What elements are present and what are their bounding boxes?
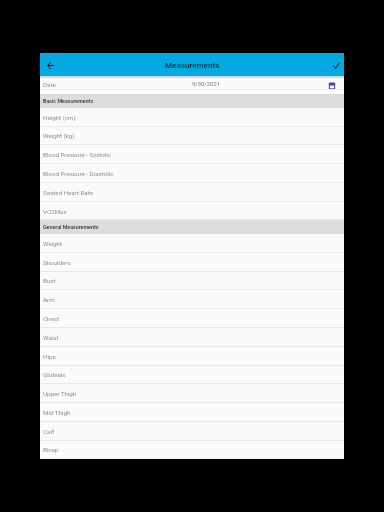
button[interactable]: Gluteals <box>40 365 344 384</box>
button[interactable]: VO2Max <box>40 202 344 221</box>
staticText: Measurements <box>165 60 220 69</box>
button[interactable]: Calf <box>40 422 344 441</box>
staticText: VO2Max <box>43 208 67 215</box>
staticText: Upper Thigh <box>43 390 77 397</box>
button[interactable]: Pick date <box>327 80 337 90</box>
staticText: Mid Thigh <box>43 409 71 416</box>
button[interactable]: Weight (kg) <box>40 126 344 145</box>
staticText: Calf <box>43 428 55 435</box>
staticText: Blood Pressure - Systolic <box>43 151 112 158</box>
button[interactable]: Date <box>40 76 344 94</box>
button[interactable]: Bicep <box>40 440 344 459</box>
button[interactable]: Shoulders <box>40 253 344 272</box>
staticText: Arm <box>43 296 55 303</box>
button[interactable]: Chest <box>40 309 344 328</box>
staticText: 9/30/2021 <box>192 81 221 88</box>
button[interactable]: Save measurements <box>329 58 343 72</box>
button[interactable]: Height (cm) <box>40 108 344 127</box>
staticText: Seated Heart Rate <box>43 189 94 196</box>
staticText: Height (cm) <box>43 114 76 121</box>
button[interactable]: Waist <box>40 328 344 347</box>
button[interactable]: Arm <box>40 290 344 309</box>
staticText: Weight <box>43 240 63 247</box>
staticText: Waist <box>43 334 59 341</box>
button[interactable]: Mid Thigh <box>40 403 344 422</box>
button[interactable]: Navigate up <box>43 58 57 72</box>
staticText: General Measurements <box>43 224 99 230</box>
button[interactable]: Weight <box>40 234 344 253</box>
staticText: Date <box>43 81 56 88</box>
staticText: Hips <box>43 353 56 360</box>
button[interactable]: Hips <box>40 347 344 366</box>
staticText: Bicep <box>43 446 59 453</box>
staticText: Bust <box>43 277 56 284</box>
button[interactable]: Bust <box>40 271 344 290</box>
button[interactable]: Seated Heart Rate <box>40 183 344 202</box>
staticText: Blood Pressure - Diastolic <box>43 170 114 177</box>
staticText: Chest <box>43 315 59 322</box>
staticText: Weight (kg) <box>43 132 75 139</box>
button[interactable]: Blood Pressure - Diastolic <box>40 164 344 183</box>
staticText: Gluteals <box>43 371 66 378</box>
button[interactable]: Blood Pressure - Systolic <box>40 145 344 164</box>
staticText: Basic Measurements <box>43 98 94 104</box>
staticText: Shoulders <box>43 259 71 266</box>
button[interactable]: Upper Thigh <box>40 384 344 403</box>
